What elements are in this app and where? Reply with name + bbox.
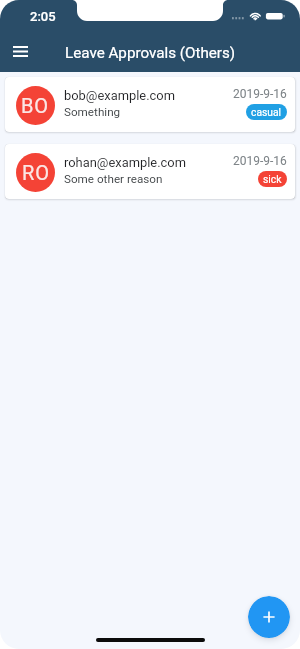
staticText: BO xyxy=(21,94,50,117)
staticText: rohan@example.com xyxy=(64,155,186,170)
staticText: Something xyxy=(64,105,121,119)
button[interactable]: Open navigation menu xyxy=(5,36,35,66)
staticText: 2019-9-16 xyxy=(233,154,287,168)
staticText: casual xyxy=(251,106,282,118)
staticText: 2019-9-16 xyxy=(233,87,287,101)
button[interactable]: BO xyxy=(5,77,295,132)
staticText: Leave Approvals (Others) xyxy=(65,44,236,62)
staticText: bob@example.com xyxy=(64,88,175,103)
staticText: RO xyxy=(22,161,50,184)
staticText: 2:05 xyxy=(30,9,56,24)
staticText: Some other reason xyxy=(64,172,163,186)
staticText: sick xyxy=(263,173,282,185)
button[interactable]: Add leave request xyxy=(248,596,290,638)
button[interactable]: RO xyxy=(5,144,295,199)
